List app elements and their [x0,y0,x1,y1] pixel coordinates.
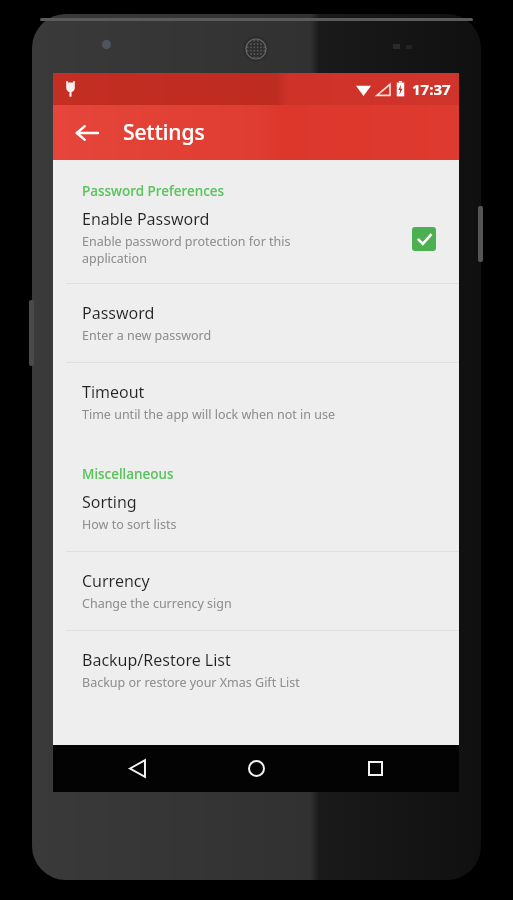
staticText: Change the currency sign [82,595,232,612]
staticText: Timeout [82,381,145,403]
button[interactable]: Home [221,745,291,792]
button[interactable]: Enable Password checkbox, checked [407,222,441,256]
button[interactable]: Backup/Restore List [53,631,459,709]
button[interactable]: Currency [53,552,459,630]
staticText: Password [82,302,155,324]
staticText: Enable Password [82,208,210,230]
staticText: 17:37 [412,79,451,99]
staticText: Password Preferences [82,182,459,200]
staticText: Miscellaneous [82,465,459,483]
button[interactable]: Back [102,745,172,792]
staticText: Backup or restore your Xmas Gift List [82,674,300,691]
staticText: Sorting [82,491,137,513]
staticText: Enter a new password [82,327,212,344]
staticText: Settings [123,118,205,147]
staticText: Currency [82,570,150,592]
button[interactable]: Enable Password [53,200,459,283]
button[interactable]: Password [53,284,459,362]
staticText: Time until the app will lock when not in… [82,406,336,423]
button[interactable]: Back [67,113,107,153]
button[interactable]: Sorting [53,483,459,551]
staticText: Backup/Restore List [82,649,231,671]
button[interactable]: Recent apps [340,745,410,792]
button[interactable]: Timeout [53,363,459,441]
staticText: How to sort lists [82,516,177,533]
staticText: Enable password protection for this appl… [82,233,291,267]
